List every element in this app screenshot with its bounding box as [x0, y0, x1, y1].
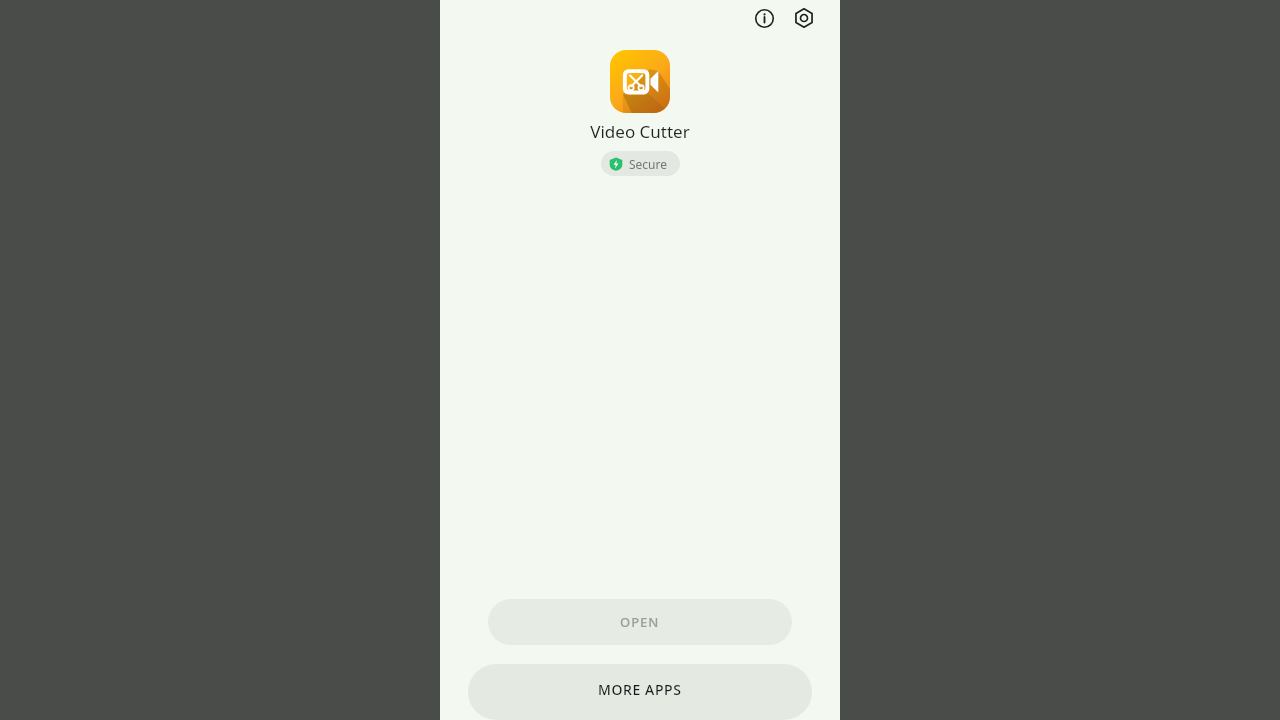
button[interactable]: Secure [601, 151, 680, 176]
staticText: MORE APPS [598, 680, 682, 699]
staticText: OPEN [620, 613, 660, 631]
button[interactable]: App info [750, 4, 778, 32]
staticText: Video Cutter [590, 120, 690, 143]
staticText: Secure [629, 156, 668, 172]
button[interactable]: OPEN [488, 599, 792, 645]
button[interactable]: Settings [790, 4, 818, 32]
button[interactable]: MORE APPS [468, 664, 812, 720]
